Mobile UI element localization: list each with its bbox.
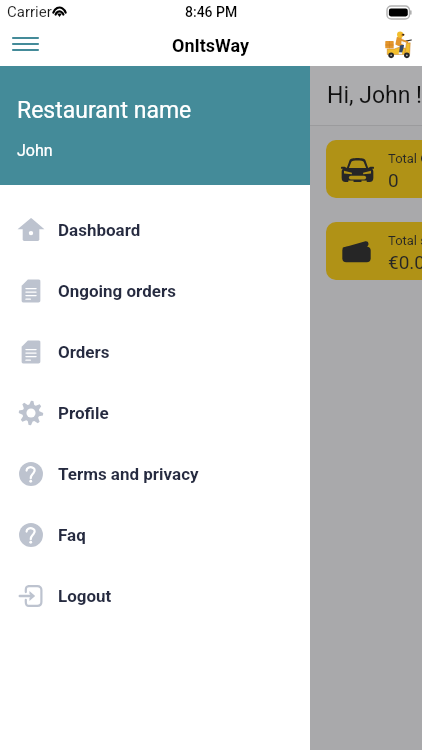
button[interactable]: Logout	[0, 565, 310, 626]
button[interactable]: Open navigation drawer	[5, 25, 45, 65]
staticText: OnItsWay	[172, 35, 250, 56]
button[interactable]: Total sales	[326, 222, 422, 280]
staticText: Restaurant name	[17, 97, 192, 124]
staticText: 0	[388, 169, 399, 191]
button[interactable]: Faq	[0, 504, 310, 565]
staticText: Ongoing orders	[58, 281, 176, 301]
staticText: Profile	[58, 403, 109, 423]
staticText: Orders	[58, 342, 110, 362]
staticText: 8:46 PM	[185, 4, 238, 20]
button[interactable]: Delivery status	[382, 28, 416, 62]
staticText: Dashboard	[58, 220, 141, 240]
staticText: Faq	[58, 525, 86, 545]
staticText: Logout	[58, 586, 112, 606]
staticText: Total sales	[388, 233, 422, 248]
staticText: John	[17, 141, 53, 160]
button[interactable]: Dashboard	[0, 199, 310, 260]
staticText: €0.00	[388, 251, 422, 273]
button[interactable]: Orders	[0, 321, 310, 382]
button[interactable]: Profile	[0, 382, 310, 443]
staticText: Carrier	[7, 3, 52, 21]
staticText: Hi, John !	[327, 82, 422, 109]
button[interactable]: Total Orders	[326, 140, 422, 198]
staticText: Total Orders	[388, 151, 422, 166]
staticText: Terms and privacy	[58, 464, 199, 484]
button[interactable]: Terms and privacy	[0, 443, 310, 504]
button[interactable]: Ongoing orders	[0, 260, 310, 321]
